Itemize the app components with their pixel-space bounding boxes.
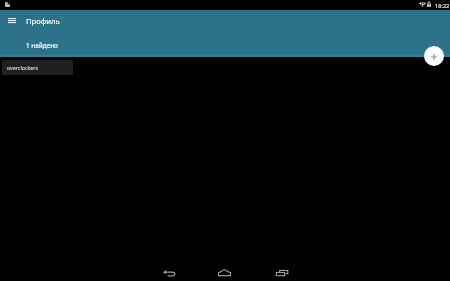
- button[interactable]: Add: [424, 46, 444, 66]
- button[interactable]: Home: [213, 264, 236, 280]
- staticText: 1 найдено: [26, 41, 58, 50]
- staticText: Профиль: [26, 16, 60, 26]
- button[interactable]: Recent apps: [270, 265, 293, 281]
- button[interactable]: overclockers: [2, 60, 73, 75]
- button[interactable]: Open navigation menu: [1, 10, 23, 33]
- staticText: 16:22: [435, 2, 450, 10]
- button[interactable]: Back: [157, 265, 180, 281]
- staticText: overclockers: [7, 64, 39, 71]
